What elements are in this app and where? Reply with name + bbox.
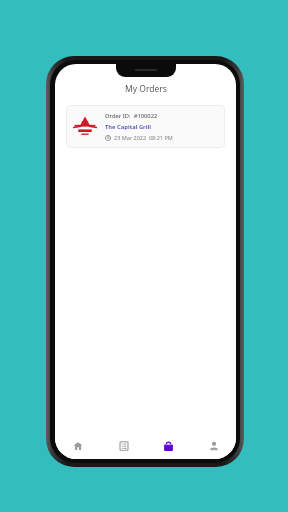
button[interactable]: Home	[55, 433, 101, 459]
button[interactable]: Order ID: #100022	[66, 105, 225, 148]
staticText: Order ID: #100022	[105, 112, 158, 120]
button[interactable]: Menu	[101, 433, 146, 459]
staticText: 23 Mar 2022 08:21 PM	[114, 134, 173, 141]
button[interactable]: Profile	[191, 433, 236, 459]
staticText: The Capital Grill	[105, 123, 151, 131]
button[interactable]: Orders	[146, 433, 191, 459]
staticText: My Orders	[125, 83, 167, 95]
